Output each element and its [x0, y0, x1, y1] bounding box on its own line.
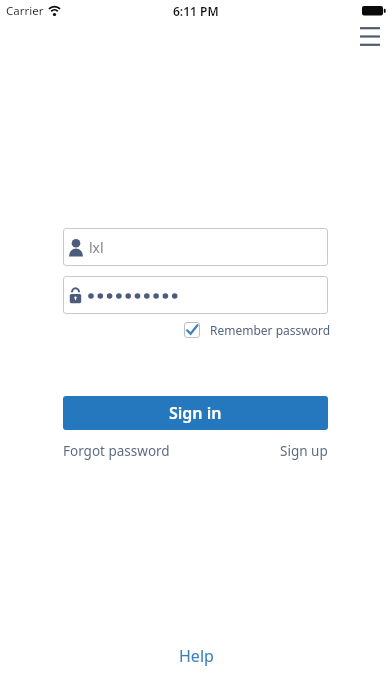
button[interactable]: Help [179, 645, 214, 667]
button[interactable]: lxl [63, 228, 328, 266]
button[interactable]: Forgot password [63, 442, 170, 460]
button[interactable]: Sign in [63, 396, 328, 430]
staticText: Forgot password [63, 442, 170, 460]
staticText: Remember password [210, 322, 331, 338]
staticText: Sign in [169, 402, 222, 424]
staticText: Sign up [280, 442, 328, 460]
button[interactable] [63, 276, 328, 314]
button[interactable]: Sign up [280, 442, 328, 460]
staticText: lxl [89, 238, 104, 257]
button[interactable] [353, 20, 387, 53]
staticText: Carrier [6, 3, 44, 19]
button[interactable]: Remember password [184, 318, 331, 342]
staticText: 6:11 PM [173, 3, 219, 19]
staticText: Help [179, 645, 214, 667]
